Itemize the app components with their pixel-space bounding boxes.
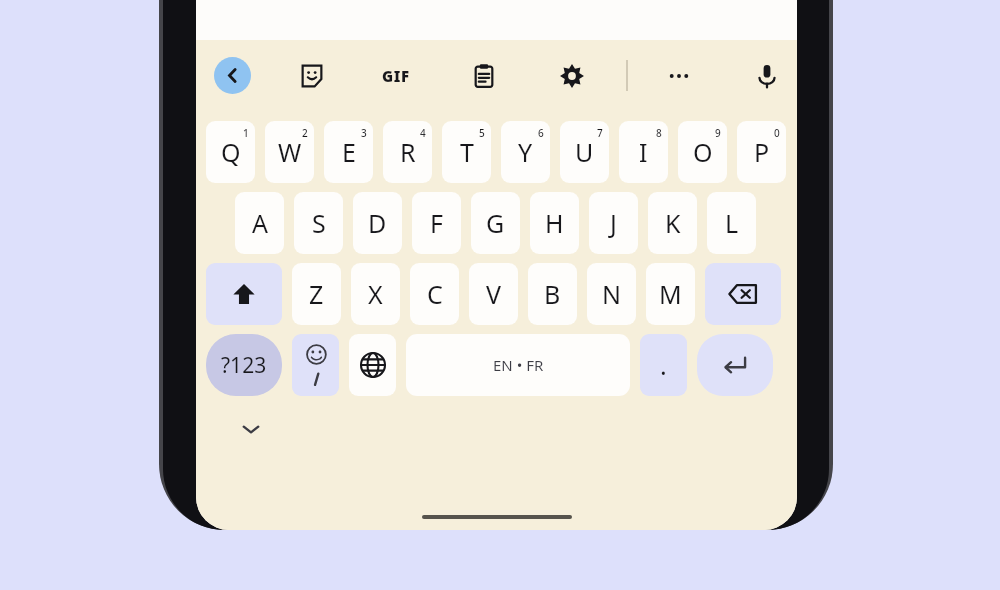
staticText: Y xyxy=(518,135,533,169)
button[interactable]: Clipboard xyxy=(467,59,501,93)
button[interactable]: P xyxy=(737,121,786,183)
staticText: R xyxy=(400,135,416,169)
staticText: I xyxy=(639,135,648,169)
staticText: ?123 xyxy=(221,351,267,380)
button[interactable]: Enter xyxy=(697,334,773,396)
staticText: Q xyxy=(221,135,241,169)
staticText: J xyxy=(610,206,617,240)
staticText: F xyxy=(430,206,443,240)
button[interactable]: Settings xyxy=(555,59,589,93)
button[interactable]: S xyxy=(294,192,343,254)
staticText: P xyxy=(754,135,770,169)
staticText: X xyxy=(368,277,383,311)
button[interactable]: X xyxy=(351,263,400,325)
button[interactable]: More options xyxy=(662,59,696,93)
button[interactable]: O xyxy=(678,121,727,183)
button[interactable]: D xyxy=(353,192,402,254)
staticText: V xyxy=(486,277,502,311)
button[interactable]: N xyxy=(587,263,636,325)
button[interactable]: W xyxy=(265,121,314,183)
staticText: EN • FR xyxy=(493,355,544,375)
staticText: 4 xyxy=(420,126,426,140)
button[interactable]: L xyxy=(707,192,756,254)
staticText: 8 xyxy=(656,126,662,140)
button[interactable]: U xyxy=(560,121,609,183)
button[interactable]: T xyxy=(442,121,491,183)
button[interactable]: Shift xyxy=(206,263,282,325)
staticText: Z xyxy=(309,277,324,311)
staticText: 2 xyxy=(302,126,308,140)
button[interactable]: H xyxy=(530,192,579,254)
button[interactable]: G xyxy=(471,192,520,254)
staticText: B xyxy=(544,277,561,311)
staticText: L xyxy=(725,206,739,240)
button[interactable]: EN • FR xyxy=(406,334,630,396)
button[interactable]: F xyxy=(412,192,461,254)
button[interactable]: Voice input xyxy=(750,59,784,93)
button[interactable]: ?123 xyxy=(206,334,282,396)
staticText: 3 xyxy=(361,126,367,140)
button[interactable]: I xyxy=(619,121,668,183)
button[interactable]: A xyxy=(235,192,284,254)
staticText: C xyxy=(427,277,443,311)
button[interactable]: Z xyxy=(292,263,341,325)
staticText: 6 xyxy=(538,126,544,140)
staticText: T xyxy=(460,135,474,169)
staticText: A xyxy=(252,206,268,240)
staticText: K xyxy=(665,206,681,240)
staticText: S xyxy=(312,206,326,240)
staticText: W xyxy=(278,135,302,169)
staticText: 5 xyxy=(479,126,485,140)
staticText: U xyxy=(575,135,594,169)
staticText: M xyxy=(659,277,682,311)
button[interactable]: Change language xyxy=(349,334,396,396)
button[interactable]: J xyxy=(589,192,638,254)
staticText: N xyxy=(602,277,622,311)
button[interactable]: R xyxy=(383,121,432,183)
button[interactable]: Emoji xyxy=(292,334,339,396)
button[interactable]: E xyxy=(324,121,373,183)
button[interactable]: V xyxy=(469,263,518,325)
button[interactable]: Backspace xyxy=(705,263,781,325)
button[interactable]: K xyxy=(648,192,697,254)
button[interactable]: Y xyxy=(501,121,550,183)
button[interactable]: . xyxy=(640,334,687,396)
button[interactable]: Back xyxy=(214,57,251,94)
button[interactable]: C xyxy=(410,263,459,325)
staticText: GIF xyxy=(382,66,410,86)
staticText: . xyxy=(660,348,667,382)
button[interactable]: GIF xyxy=(379,59,413,93)
button[interactable]: Q xyxy=(206,121,255,183)
button[interactable]: M xyxy=(646,263,695,325)
staticText: D xyxy=(368,206,387,240)
button[interactable]: Hide keyboard xyxy=(238,416,264,442)
staticText: 1 xyxy=(243,126,249,140)
staticText: E xyxy=(342,135,356,169)
staticText: G xyxy=(486,206,505,240)
staticText: 9 xyxy=(715,126,721,140)
button[interactable]: Stickers xyxy=(295,59,329,93)
button[interactable]: B xyxy=(528,263,577,325)
staticText: H xyxy=(545,206,564,240)
staticText: 7 xyxy=(597,126,603,140)
staticText: 0 xyxy=(774,126,780,140)
staticText: O xyxy=(693,135,713,169)
